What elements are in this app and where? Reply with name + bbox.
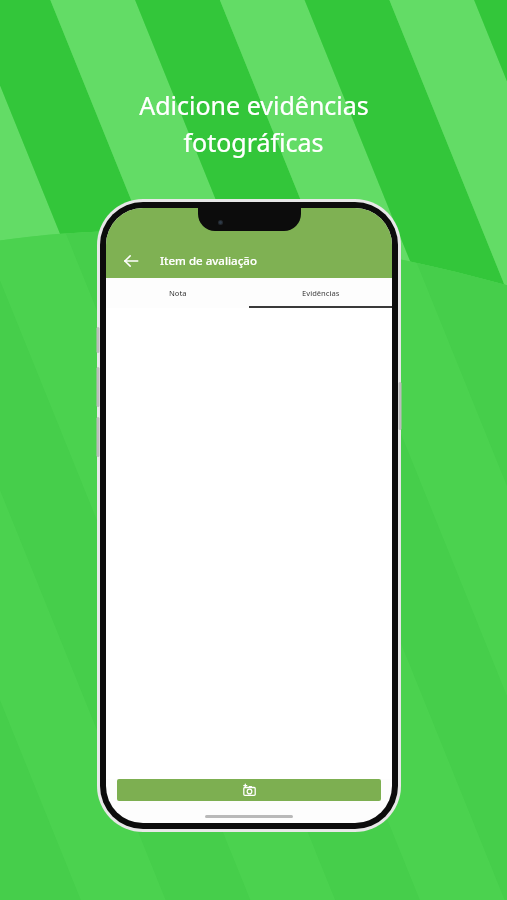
staticText: Item de avaliação: [160, 253, 257, 269]
staticText: Adicione evidências: [139, 88, 369, 122]
button[interactable]: Adicionar foto: [117, 779, 381, 801]
staticText: fotográficas: [183, 125, 324, 159]
button[interactable]: Evidências: [249, 278, 392, 308]
staticText: Nota: [169, 288, 187, 298]
staticText: Evidências: [302, 288, 340, 298]
button[interactable]: Nota: [106, 278, 249, 308]
button[interactable]: Voltar: [116, 246, 146, 276]
